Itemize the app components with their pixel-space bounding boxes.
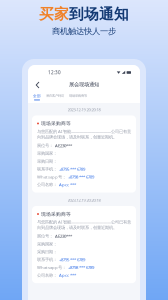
staticText: +8798 *** 6789	[68, 174, 94, 180]
staticText: 采购国家：	[37, 241, 57, 247]
staticText: 12:30	[48, 69, 61, 76]
staticText: 展位号：	[37, 143, 53, 148]
staticText: 到场通知	[69, 5, 129, 23]
button[interactable]: 潜在客户到访	[46, 94, 64, 100]
staticText: 2023-12-19 20:20:18	[67, 198, 100, 203]
staticText: 联系手机：	[37, 166, 57, 172]
staticText: Whatsapp号：	[37, 264, 66, 270]
staticText: 2023-12-19 20:20:18	[67, 107, 100, 112]
staticText: 联系手机：	[37, 257, 57, 262]
staticText: 商机触达快人一步	[52, 26, 116, 36]
staticText: 公司名称：	[37, 182, 57, 187]
staticText: 采购国家：	[37, 151, 57, 156]
staticText: +8795 *** 6789	[59, 166, 85, 172]
staticText: 展会现场通知	[69, 81, 99, 88]
staticText: 与您匹配的 AI 智能——————————公司已有意向到品牌会现场，请及时联系，…	[37, 128, 131, 140]
button[interactable]: 返回	[33, 79, 41, 89]
staticText: 展位号：	[37, 233, 53, 239]
staticText: AE230***	[55, 143, 72, 148]
button[interactable]: 全部	[33, 94, 41, 100]
staticText: Apcc ***	[59, 182, 76, 188]
staticText: AE230***	[55, 233, 72, 239]
staticText: 全部	[33, 94, 41, 98]
staticText: 现场采购商等	[41, 211, 71, 217]
staticText: 潜在客户到访	[46, 94, 64, 98]
staticText: Whatsapp号：	[37, 174, 66, 180]
staticText: 采购日期：	[37, 249, 57, 254]
staticText: 公司名称：	[37, 272, 57, 278]
staticText: 现场采购商等	[69, 94, 87, 98]
staticText: Apcc ***	[59, 272, 76, 278]
staticText: +8798 *** 6789	[68, 264, 94, 270]
staticText: 采购日期：	[37, 158, 57, 164]
staticText: 现场采购商等	[41, 120, 71, 126]
staticText: +8795 *** 6789	[59, 257, 85, 262]
button[interactable]: 现场采购商等	[32, 206, 136, 283]
staticText: 与您匹配的 AI 智能——————————公司已有意向到品牌会现场，请及时联系，…	[37, 219, 131, 230]
button[interactable]: 现场采购商等	[69, 94, 87, 100]
staticText: 买家	[39, 5, 69, 23]
button[interactable]: 现场采购商等	[32, 115, 136, 192]
